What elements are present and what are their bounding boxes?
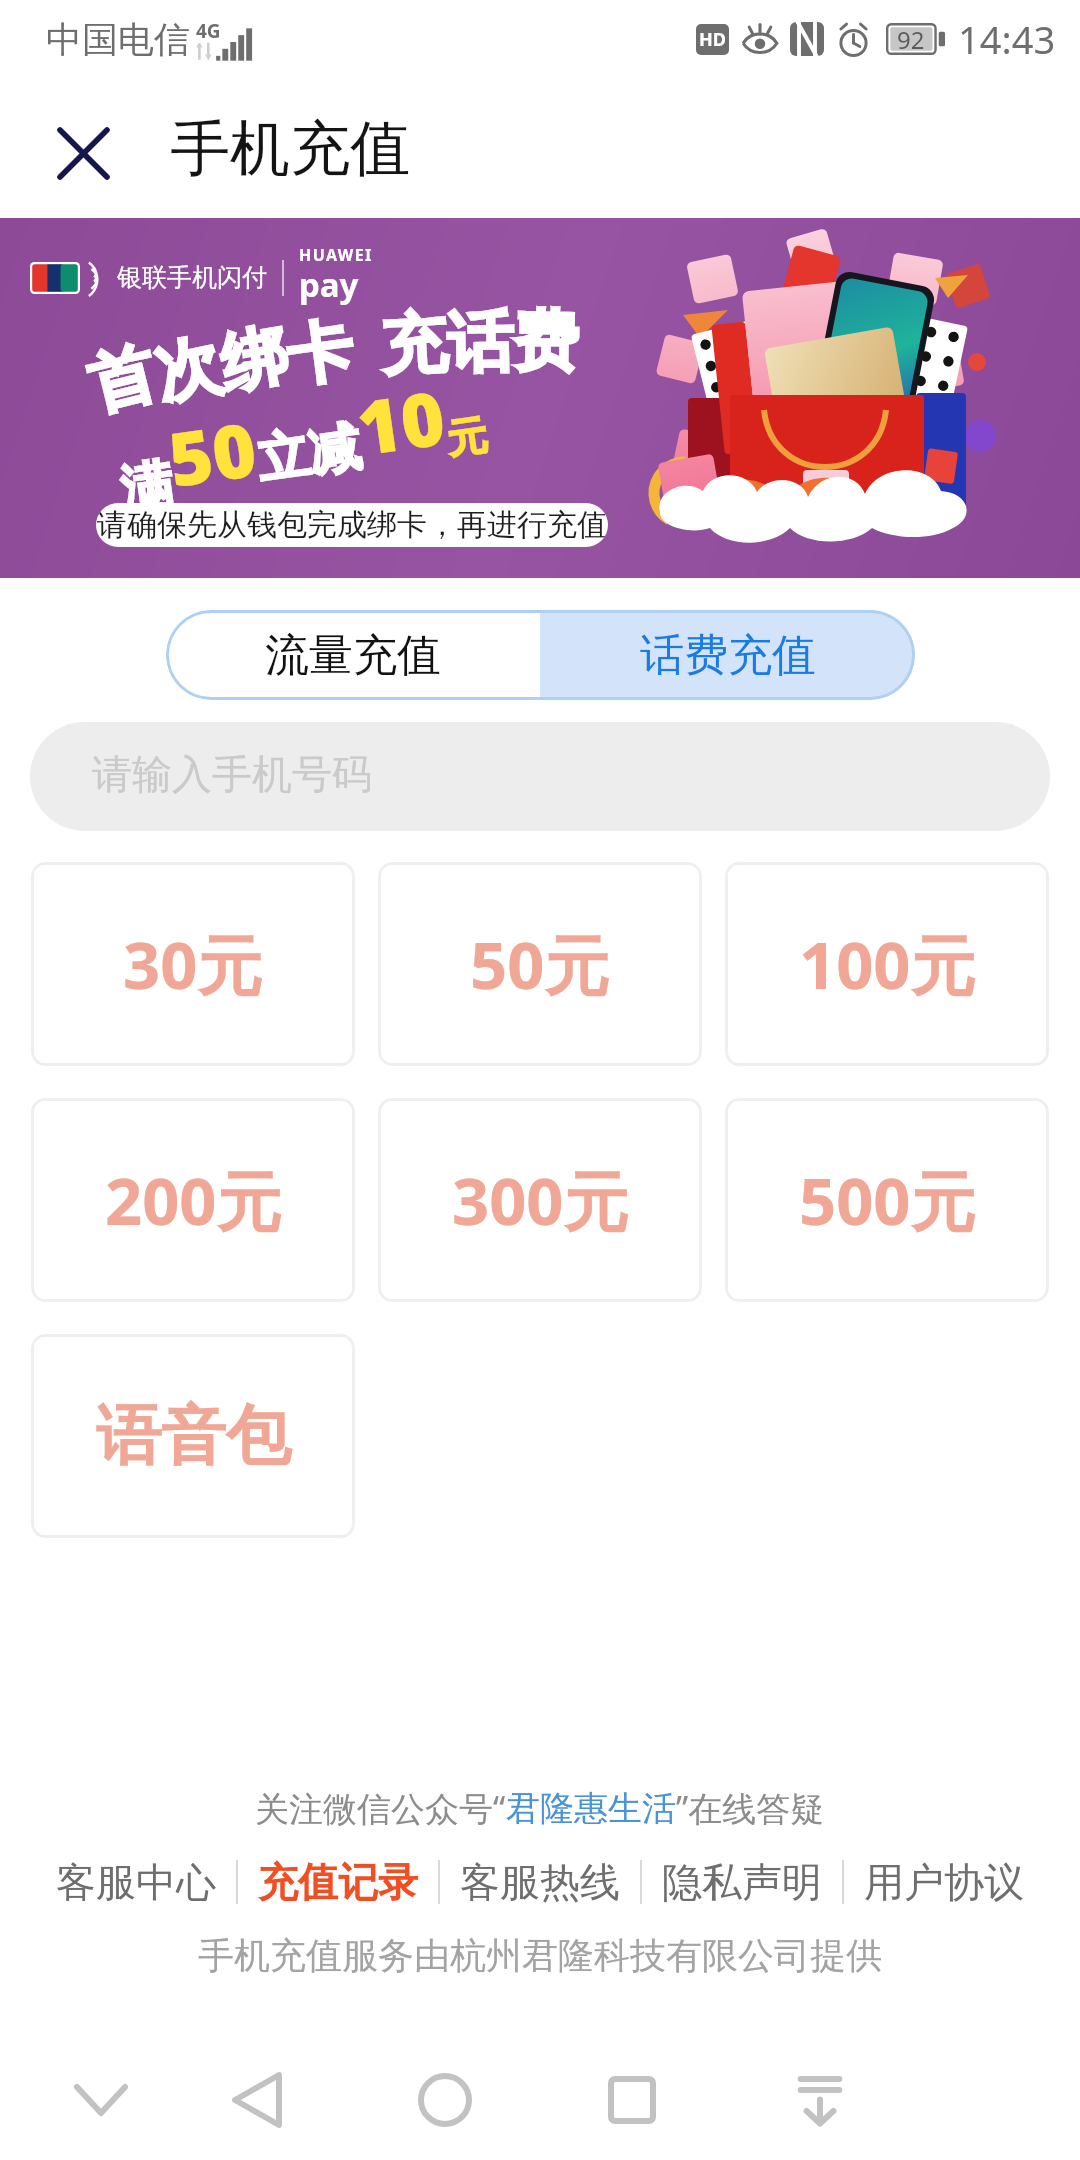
button[interactable]: 充值记录 [238, 1851, 438, 1913]
staticText: 银联手机闪付 [117, 262, 267, 293]
staticText: 请输入手机号码 [92, 749, 372, 799]
staticText: 14:43 [958, 13, 1056, 65]
staticText: 君隆惠生活 [506, 1787, 676, 1830]
button[interactable]: 100元 [725, 862, 1049, 1066]
staticText: 次 [147, 322, 229, 417]
staticText: 充值记录 [258, 1857, 418, 1907]
button[interactable]: 用户协议 [844, 1851, 1044, 1913]
staticText: 首 [80, 331, 164, 428]
staticText: ”在线答疑 [676, 1785, 825, 1831]
button[interactable]: 隐私声明 [642, 1851, 842, 1913]
staticText: 50元 [470, 920, 610, 1009]
staticText: 客服热线 [460, 1857, 620, 1907]
button[interactable]: Hide keyboard [46, 2045, 156, 2155]
staticText: 请确保先从钱包完成绑卡，再进行充值 [97, 506, 607, 544]
button[interactable]: 客服中心 [36, 1851, 236, 1913]
staticText: 92 [897, 23, 925, 55]
button[interactable]: 话费充值 [540, 610, 915, 700]
button[interactable]: 500元 [725, 1098, 1049, 1302]
button[interactable]: 300元 [378, 1098, 702, 1302]
button[interactable]: Back [201, 2045, 311, 2155]
staticText: 10 [351, 365, 451, 477]
button[interactable]: 客服热线 [440, 1851, 640, 1913]
staticText: 隐私声明 [662, 1857, 822, 1907]
staticText: 充 [379, 301, 449, 388]
staticText: 绑 [214, 314, 294, 407]
staticText: HUAWEI [299, 244, 373, 266]
staticText: 30元 [123, 920, 263, 1009]
button[interactable]: Download [765, 2045, 875, 2155]
staticText: 话费充值 [640, 628, 816, 683]
staticText: 元 [444, 409, 490, 464]
button[interactable]: 流量充值 [166, 610, 540, 700]
staticText: 50 [162, 397, 262, 509]
button[interactable]: 200元 [31, 1098, 355, 1302]
button[interactable]: 30元 [31, 862, 355, 1066]
staticText: 4G [196, 18, 221, 44]
button[interactable]: 50元 [378, 862, 702, 1066]
staticText: 话 [446, 300, 514, 385]
staticText: 200元 [105, 1156, 282, 1245]
staticText: 关注微信公众号“ [255, 1785, 506, 1831]
button[interactable]: Close [27, 97, 140, 210]
staticText: 500元 [799, 1156, 976, 1245]
staticText: 费 [512, 299, 580, 383]
staticText: 立减 [253, 414, 365, 494]
staticText: 手机充值 [170, 111, 410, 187]
button[interactable]: Recents [577, 2045, 687, 2155]
staticText: 中国电信 [46, 17, 190, 62]
staticText: HD [699, 27, 726, 52]
button[interactable]: Home [390, 2045, 500, 2155]
staticText: 语音包 [96, 1395, 291, 1477]
staticText: 300元 [452, 1156, 629, 1245]
staticText: 100元 [799, 920, 976, 1009]
staticText: 用户协议 [864, 1857, 1024, 1907]
staticText: 手机充值服务由杭州君隆科技有限公司提供 [198, 1933, 882, 1978]
button[interactable]: 请输入手机号码 [30, 722, 1050, 831]
button[interactable]: 语音包 [31, 1334, 355, 1538]
staticText: 满 [117, 452, 177, 524]
staticText: 卡 [282, 308, 358, 399]
staticText: pay [299, 262, 359, 307]
button[interactable]: 首次绑卡充话费 满50立减10元 [0, 218, 1080, 578]
staticText: 客服中心 [56, 1857, 216, 1907]
staticText: 流量充值 [265, 628, 441, 683]
